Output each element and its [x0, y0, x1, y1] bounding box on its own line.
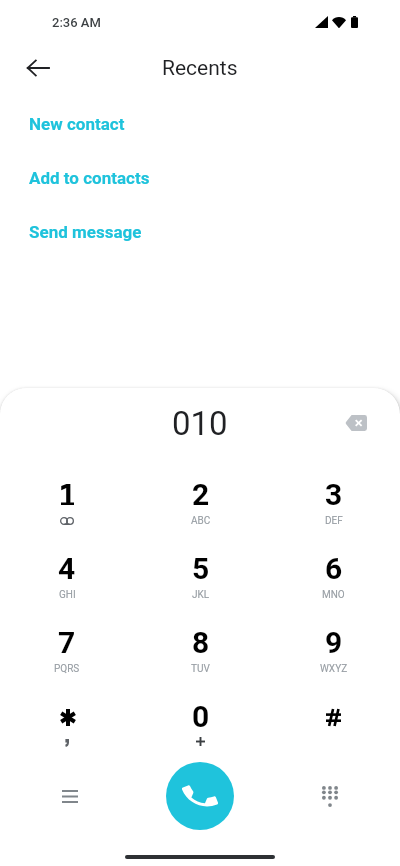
staticText: 9	[325, 625, 343, 660]
button[interactable]: Back	[14, 44, 62, 92]
button[interactable]: 8	[134, 606, 267, 680]
button[interactable]: 4	[0, 532, 134, 606]
button[interactable]	[267, 680, 400, 754]
button[interactable]: Backspace	[334, 401, 378, 445]
staticText: 8	[192, 625, 210, 660]
staticText: WXYZ	[320, 663, 348, 675]
staticText: New contact	[29, 114, 125, 134]
staticText: GHI	[59, 589, 76, 601]
staticText: Send message	[29, 222, 142, 242]
staticText: 6	[325, 551, 343, 586]
staticText: ABC	[191, 515, 211, 527]
staticText: Recents	[162, 56, 238, 81]
button[interactable]: Add to contacts	[0, 151, 400, 205]
staticText: MNO	[322, 589, 345, 601]
staticText: 2	[192, 477, 210, 512]
button[interactable]: 3	[267, 458, 400, 532]
staticText: 0	[192, 699, 210, 734]
button[interactable]: 0	[134, 680, 267, 754]
button[interactable]: Call	[166, 762, 234, 830]
staticText: JKL	[192, 589, 210, 601]
staticText: 4	[58, 551, 76, 586]
button[interactable]: Call log	[46, 772, 94, 820]
button[interactable]: 2	[134, 458, 267, 532]
staticText: 3	[325, 477, 343, 512]
button[interactable]: 6	[267, 532, 400, 606]
button[interactable]	[0, 680, 134, 754]
button[interactable]: New contact	[0, 97, 400, 151]
staticText: TUV	[191, 663, 210, 675]
button[interactable]	[0, 458, 134, 532]
staticText: 5	[192, 551, 210, 586]
button[interactable]: 7	[0, 606, 134, 680]
staticText: PQRS	[54, 663, 80, 675]
button[interactable]: 5	[134, 532, 267, 606]
staticText: 010	[172, 404, 228, 443]
staticText: DEF	[325, 515, 343, 527]
button[interactable]: Dialpad	[306, 772, 354, 820]
staticText: 7	[58, 625, 76, 660]
button[interactable]: Send message	[0, 205, 400, 259]
staticText: 2:36 AM	[52, 15, 101, 30]
button[interactable]: 9	[267, 606, 400, 680]
staticText: Add to contacts	[29, 168, 150, 188]
